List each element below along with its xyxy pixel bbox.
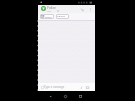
staticText: 100: [47, 10, 51, 13]
staticText: Type a message: [44, 85, 65, 89]
button[interactable]: Call: [79, 6, 85, 12]
button[interactable]: Police: [40, 14, 54, 19]
button[interactable]: Emoji: [39, 84, 45, 90]
button[interactable]: Contact avatar: [41, 6, 46, 11]
staticText: Nearby alrt: [57, 14, 68, 19]
button[interactable]: Nearby alrt: [56, 14, 69, 19]
staticText: Police: [47, 6, 56, 10]
button[interactable]: Home: [61, 92, 70, 101]
button[interactable]: Camera: [84, 84, 90, 90]
button[interactable]: Back: [46, 92, 55, 101]
button[interactable]: More options: [87, 6, 93, 12]
button[interactable]: Recents: [76, 92, 85, 101]
button[interactable]: Attach: [78, 84, 84, 90]
staticText: Police: [45, 15, 52, 18]
